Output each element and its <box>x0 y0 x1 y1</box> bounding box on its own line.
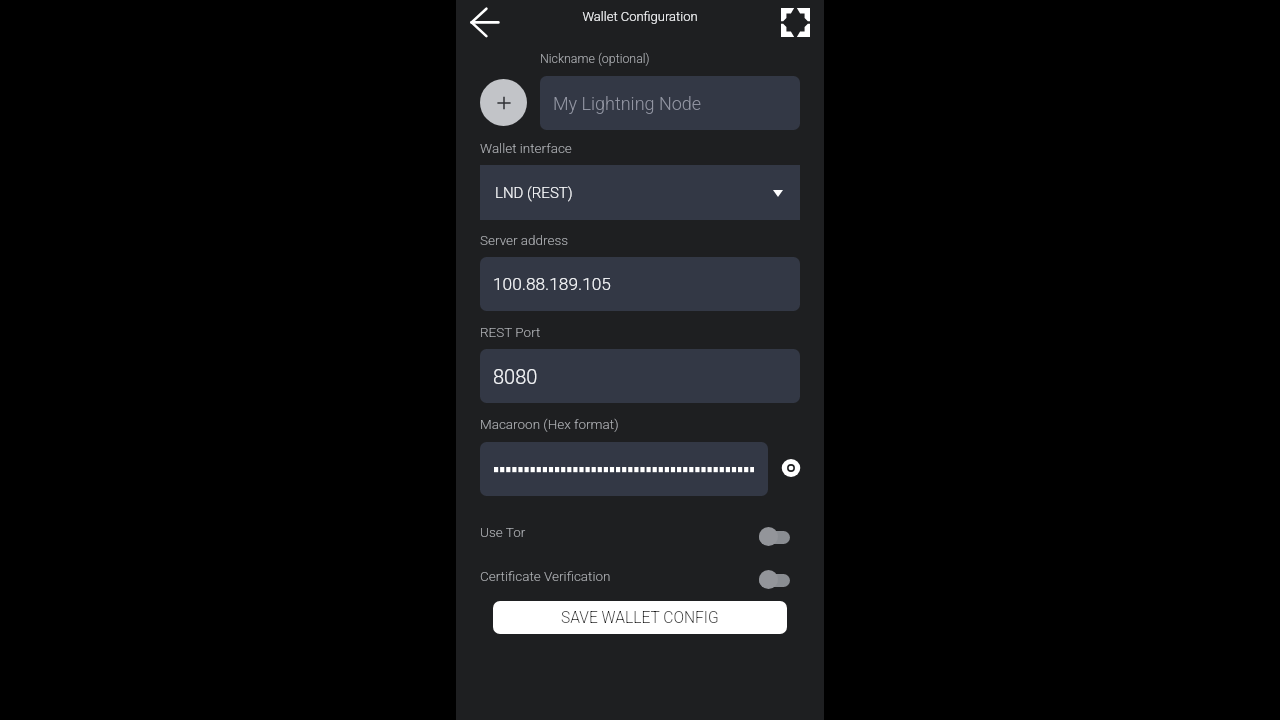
staticText: LND (REST) <box>495 184 573 202</box>
staticText: 100.88.189.105 <box>493 274 611 294</box>
button[interactable]: 100.88.189.105 <box>480 257 800 311</box>
button[interactable] <box>480 442 768 496</box>
button[interactable]: 8080 <box>480 349 800 403</box>
staticText: Wallet Configuration <box>456 9 824 24</box>
button[interactable]: Back <box>465 2 505 42</box>
staticText: SAVE WALLET CONFIG <box>561 609 719 627</box>
button[interactable]: SAVE WALLET CONFIG <box>493 601 787 634</box>
staticText: REST Port <box>480 324 541 340</box>
button[interactable]: Toggle Use Tor <box>753 523 795 549</box>
staticText: Certificate Verification <box>480 568 611 584</box>
button[interactable]: LND (REST) <box>480 165 800 220</box>
button[interactable]: Add wallet <box>480 79 527 126</box>
button[interactable]: My Lightning Node <box>540 76 800 130</box>
staticText: Macaroon (Hex format) <box>480 416 619 432</box>
staticText: Nickname (optional) <box>540 51 650 66</box>
staticText: 8080 <box>493 365 538 388</box>
staticText: Wallet interface <box>480 140 572 156</box>
button[interactable]: Fullscreen <box>772 0 818 45</box>
button[interactable]: Show macaroon <box>777 454 805 482</box>
button[interactable]: Toggle Certificate Verification <box>753 566 795 592</box>
staticText: My Lightning Node <box>553 93 702 114</box>
staticText: Use Tor <box>480 524 526 540</box>
staticText: Server address <box>480 232 569 248</box>
